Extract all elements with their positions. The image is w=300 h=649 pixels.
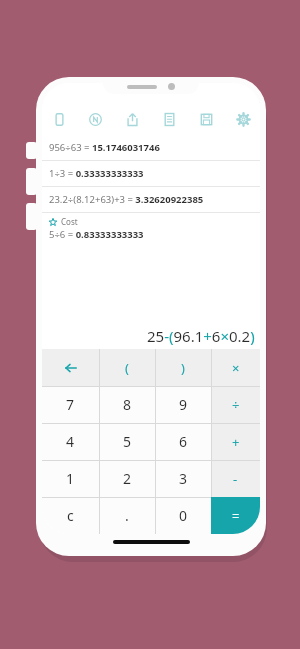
button[interactable]: 7 [42, 386, 99, 423]
staticText: × [232, 359, 240, 377]
button[interactable]: Scientific mode [84, 108, 106, 130]
staticText: 0 [179, 506, 188, 525]
staticText: 4 [66, 432, 75, 451]
button[interactable]: + [211, 423, 260, 460]
button[interactable]: History [158, 108, 180, 130]
button[interactable]: 3 [155, 460, 211, 497]
button[interactable]: . [99, 497, 155, 534]
button[interactable]: Settings [232, 108, 254, 130]
button[interactable]: 0 [155, 497, 211, 534]
staticText: ÷ [232, 396, 240, 414]
button[interactable]: ÷ [211, 386, 260, 423]
button[interactable]: = [211, 497, 260, 534]
button[interactable]: 1 [42, 460, 99, 497]
button[interactable]: 4 [42, 423, 99, 460]
button[interactable]: 2 [99, 460, 155, 497]
staticText: - [233, 470, 238, 488]
button[interactable]: ) [155, 349, 211, 386]
button[interactable]: Cost [42, 213, 260, 245]
staticText: . [125, 506, 129, 525]
button[interactable]: c [42, 497, 99, 534]
staticText: 5 [123, 432, 132, 451]
staticText: 956÷63 = 15.1746031746 [49, 141, 160, 154]
staticText: 9 [179, 395, 188, 414]
staticText: 25-(96.1+6×0.2) [147, 326, 255, 346]
button[interactable]: 5 [99, 423, 155, 460]
button[interactable]: - [211, 460, 260, 497]
button[interactable]: 9 [155, 386, 211, 423]
button[interactable]: ( [99, 349, 155, 386]
staticText: ) [181, 359, 185, 377]
staticText: ( [125, 359, 129, 377]
staticText: + [232, 433, 240, 451]
button[interactable]: 6 [155, 423, 211, 460]
staticText: = [232, 507, 240, 525]
staticText: 3 [179, 469, 188, 488]
staticText: 7 [66, 395, 75, 414]
button[interactable]: 23.2÷(8.12+63)+3 = 3.32620922385 [42, 187, 260, 213]
staticText: Cost [61, 216, 78, 227]
other: Backspace [65, 362, 77, 374]
button[interactable]: × [211, 349, 260, 386]
staticText: 6 [179, 432, 188, 451]
button[interactable]: Backspace [42, 349, 99, 386]
staticText: c [67, 506, 74, 525]
staticText: 8 [123, 395, 132, 414]
staticText: 5÷6 = 0.83333333333 [49, 228, 144, 241]
button[interactable]: Save [195, 108, 217, 130]
button[interactable]: Note [48, 108, 70, 130]
staticText: 1÷3 = 0.33333333333 [49, 167, 144, 180]
staticText: 23.2÷(8.12+63)+3 = 3.32620922385 [49, 193, 204, 206]
staticText: 1 [66, 469, 75, 488]
button[interactable]: 1÷3 = 0.33333333333 [42, 161, 260, 187]
button[interactable]: 8 [99, 386, 155, 423]
button[interactable]: Share [121, 108, 143, 130]
staticText: 2 [123, 469, 132, 488]
button[interactable]: 956÷63 = 15.1746031746 [42, 135, 260, 161]
